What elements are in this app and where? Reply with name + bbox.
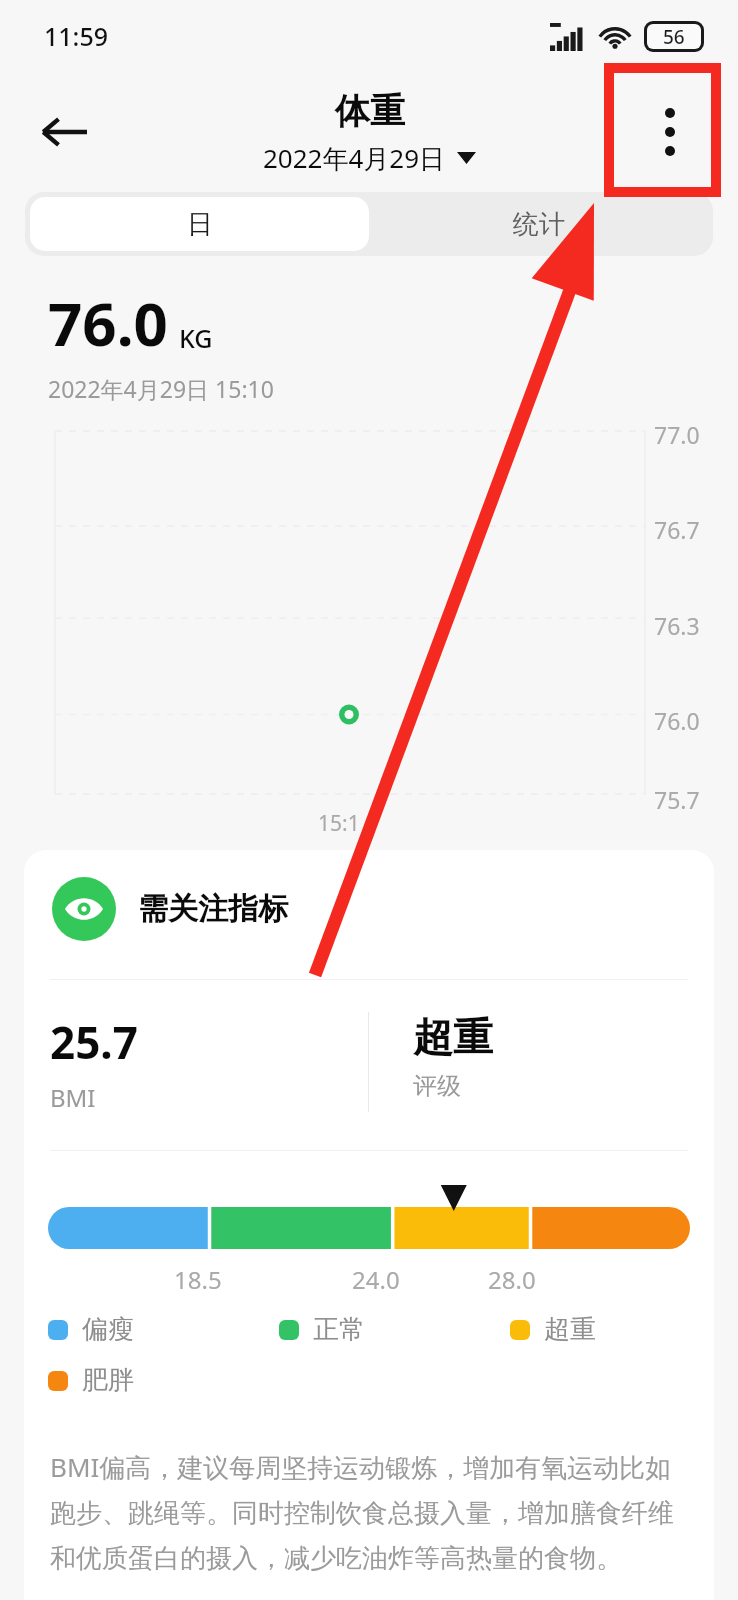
staticText: 需关注指标: [138, 890, 288, 928]
staticText: 2022年4月29日 15:10: [48, 373, 274, 404]
staticText: 56: [663, 24, 685, 49]
staticText: 体重: [335, 89, 405, 133]
staticText: 肥胖: [82, 1364, 134, 1397]
staticText: 评级: [413, 1071, 461, 1101]
staticText: 11:59: [44, 19, 109, 53]
staticText: KG: [179, 321, 213, 355]
staticText: 日: [187, 208, 213, 241]
staticText: 正常: [313, 1313, 365, 1346]
staticText: 24.0: [352, 1263, 400, 1296]
staticText: 超重: [544, 1313, 596, 1346]
button[interactable]: 日: [30, 197, 369, 251]
staticText: 76.7: [654, 514, 700, 545]
staticText: BMI偏高，建议每周坚持运动锻炼，增加有氧运动比如跑步、跳绳等。同时控制饮食总摄…: [50, 1449, 688, 1574]
staticText: 2022年4月29日: [263, 140, 446, 176]
staticText: 76.3: [654, 610, 700, 641]
button[interactable]: More options: [632, 94, 708, 170]
button[interactable]: 2022年4月29日: [263, 140, 476, 176]
button[interactable]: 需关注指标: [52, 877, 714, 941]
staticText: 超重: [413, 1012, 493, 1062]
staticText: 77.0: [654, 419, 700, 450]
staticText: 76.0: [654, 705, 700, 736]
staticText: 统计: [513, 208, 565, 241]
staticText: 76.0: [48, 282, 168, 364]
button[interactable]: Back: [26, 94, 102, 170]
staticText: 15:1: [318, 809, 360, 838]
staticText: BMI: [50, 1081, 96, 1114]
button[interactable]: 统计: [369, 197, 708, 251]
staticText: 28.0: [488, 1263, 536, 1296]
staticText: 25.7: [50, 1012, 138, 1072]
staticText: 偏瘦: [82, 1313, 134, 1346]
staticText: 18.5: [174, 1263, 222, 1296]
staticText: 75.7: [654, 784, 700, 815]
